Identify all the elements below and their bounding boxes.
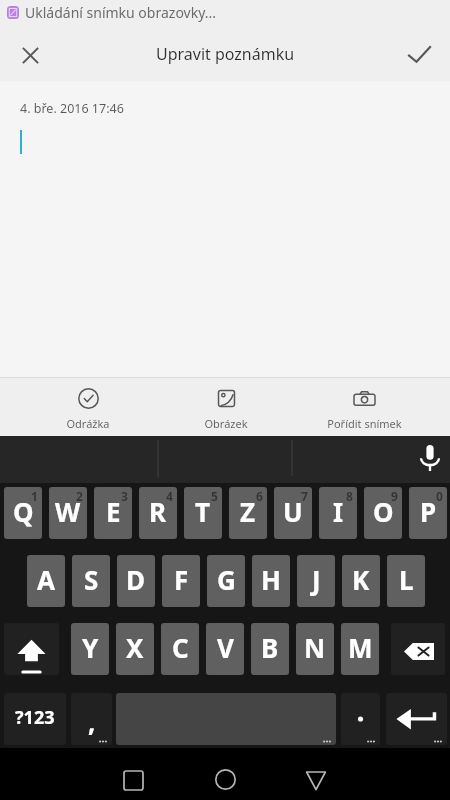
button[interactable]: Back [293, 748, 339, 800]
staticText: F [174, 562, 189, 597]
button[interactable]: ?123 [4, 693, 66, 745]
button[interactable]: Shift [4, 623, 59, 675]
button[interactable]: B [251, 623, 289, 675]
staticText: N [304, 630, 326, 665]
staticText: X [126, 630, 144, 665]
staticText: A [37, 562, 55, 597]
staticText: 8 [346, 488, 353, 504]
staticText: V [217, 630, 234, 665]
staticText: Pořídit snímek [327, 416, 402, 431]
button[interactable]: P [409, 487, 447, 539]
button[interactable]: F [162, 555, 200, 607]
staticText: Obrázek [204, 416, 248, 431]
staticText: W [55, 494, 81, 529]
button[interactable]: , [71, 693, 112, 745]
button[interactable]: U [274, 487, 312, 539]
staticText: 4 [166, 488, 173, 504]
button[interactable]: K [342, 555, 380, 607]
staticText: 0 [436, 488, 443, 504]
button[interactable]: V [206, 623, 244, 675]
button[interactable]: Pořídit snímek [295, 378, 433, 436]
staticText: 7 [301, 488, 308, 504]
staticText: O [373, 494, 394, 529]
staticText: 3 [121, 488, 128, 504]
button[interactable]: I [319, 487, 357, 539]
button[interactable]: Obrázek [157, 378, 295, 436]
staticText: Ukládání snímku obrazovky... [25, 3, 217, 22]
button[interactable]: Voice input [410, 437, 448, 475]
staticText: T [195, 494, 211, 529]
staticText: 4. bře. 2016 17:46 [20, 100, 124, 117]
button[interactable]: E [94, 487, 132, 539]
staticText: 1 [31, 488, 38, 504]
staticText: U [283, 494, 303, 529]
staticText: D [126, 562, 146, 597]
button[interactable]: L [387, 555, 425, 607]
button[interactable] [341, 693, 380, 745]
button[interactable]: H [252, 555, 290, 607]
staticText: L [399, 562, 414, 597]
button[interactable]: Z [229, 487, 267, 539]
staticText: Odrážka [66, 416, 110, 431]
staticText: 2 [76, 488, 83, 504]
staticText: M [348, 630, 373, 665]
staticText: K [352, 562, 370, 597]
button[interactable]: S [72, 555, 110, 607]
staticText: S [84, 562, 99, 597]
button[interactable]: Recents [110, 748, 156, 800]
staticText: G [217, 562, 236, 597]
staticText: I [333, 494, 344, 529]
button[interactable]: C [161, 623, 199, 675]
button[interactable]: Odrážka [19, 378, 157, 436]
staticText: , [88, 704, 96, 739]
staticText: C [172, 630, 189, 665]
staticText: Upravit poznámku [156, 43, 295, 65]
button[interactable]: Enter [386, 693, 447, 745]
button[interactable]: M [341, 623, 379, 675]
staticText: Z [240, 494, 256, 529]
staticText: P [420, 494, 437, 529]
staticText: 5 [211, 488, 218, 504]
button[interactable] [116, 693, 336, 745]
button[interactable]: W [49, 487, 87, 539]
button[interactable]: Backspace [391, 623, 445, 675]
staticText: 9 [391, 488, 398, 504]
button[interactable]: T [184, 487, 222, 539]
button[interactable]: N [296, 623, 334, 675]
staticText: Q [13, 494, 34, 529]
staticText: B [261, 630, 279, 665]
button[interactable]: Y [71, 623, 109, 675]
staticText: H [261, 562, 281, 597]
staticText: 6 [256, 488, 263, 504]
button[interactable]: Home [202, 748, 248, 800]
button[interactable]: O [364, 487, 402, 539]
staticText: J [312, 562, 321, 597]
button[interactable]: G [207, 555, 245, 607]
staticText: R [149, 494, 167, 529]
button[interactable]: X [116, 623, 154, 675]
button[interactable]: A [27, 555, 65, 607]
staticText: ?123 [15, 705, 55, 730]
button[interactable]: R [139, 487, 177, 539]
button[interactable]: J [297, 555, 335, 607]
button[interactable]: D [117, 555, 155, 607]
button[interactable]: Save [398, 31, 442, 75]
button[interactable]: Close [8, 31, 52, 75]
staticText: E [106, 494, 121, 529]
button[interactable]: Q [4, 487, 42, 539]
staticText: Y [82, 630, 99, 665]
